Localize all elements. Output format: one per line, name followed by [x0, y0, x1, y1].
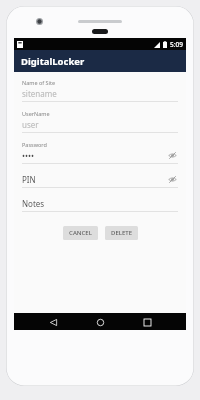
button[interactable]: Home	[92, 314, 108, 330]
staticText: Name of Site	[22, 79, 56, 86]
staticText: PIN	[22, 174, 167, 185]
button[interactable]: Password	[22, 141, 178, 164]
staticText: sitename	[22, 88, 178, 99]
staticText: CANCEL	[69, 229, 92, 237]
button[interactable]: Toggle visibility	[167, 150, 178, 161]
staticText: user	[22, 119, 178, 130]
staticText: UserName	[22, 110, 50, 117]
button[interactable]: PIN	[22, 174, 178, 188]
staticText: DigitalLocker	[21, 55, 85, 68]
button[interactable]: DELETE	[105, 226, 138, 240]
staticText: Notes	[22, 198, 178, 209]
button[interactable]: Back	[45, 314, 61, 330]
button[interactable]: Recents	[139, 314, 155, 330]
button[interactable]: Toggle visibility	[167, 174, 178, 185]
button[interactable]: DigitalLocker	[14, 50, 186, 72]
button[interactable]: Name of Site	[22, 79, 178, 102]
button[interactable]: CANCEL	[63, 226, 98, 240]
staticText: Password	[22, 141, 47, 148]
staticText: 5:09	[170, 40, 183, 49]
staticText: ••••	[22, 150, 167, 161]
staticText: DELETE	[111, 229, 132, 237]
button[interactable]: Notes	[22, 198, 178, 212]
button[interactable]: UserName	[22, 110, 178, 133]
